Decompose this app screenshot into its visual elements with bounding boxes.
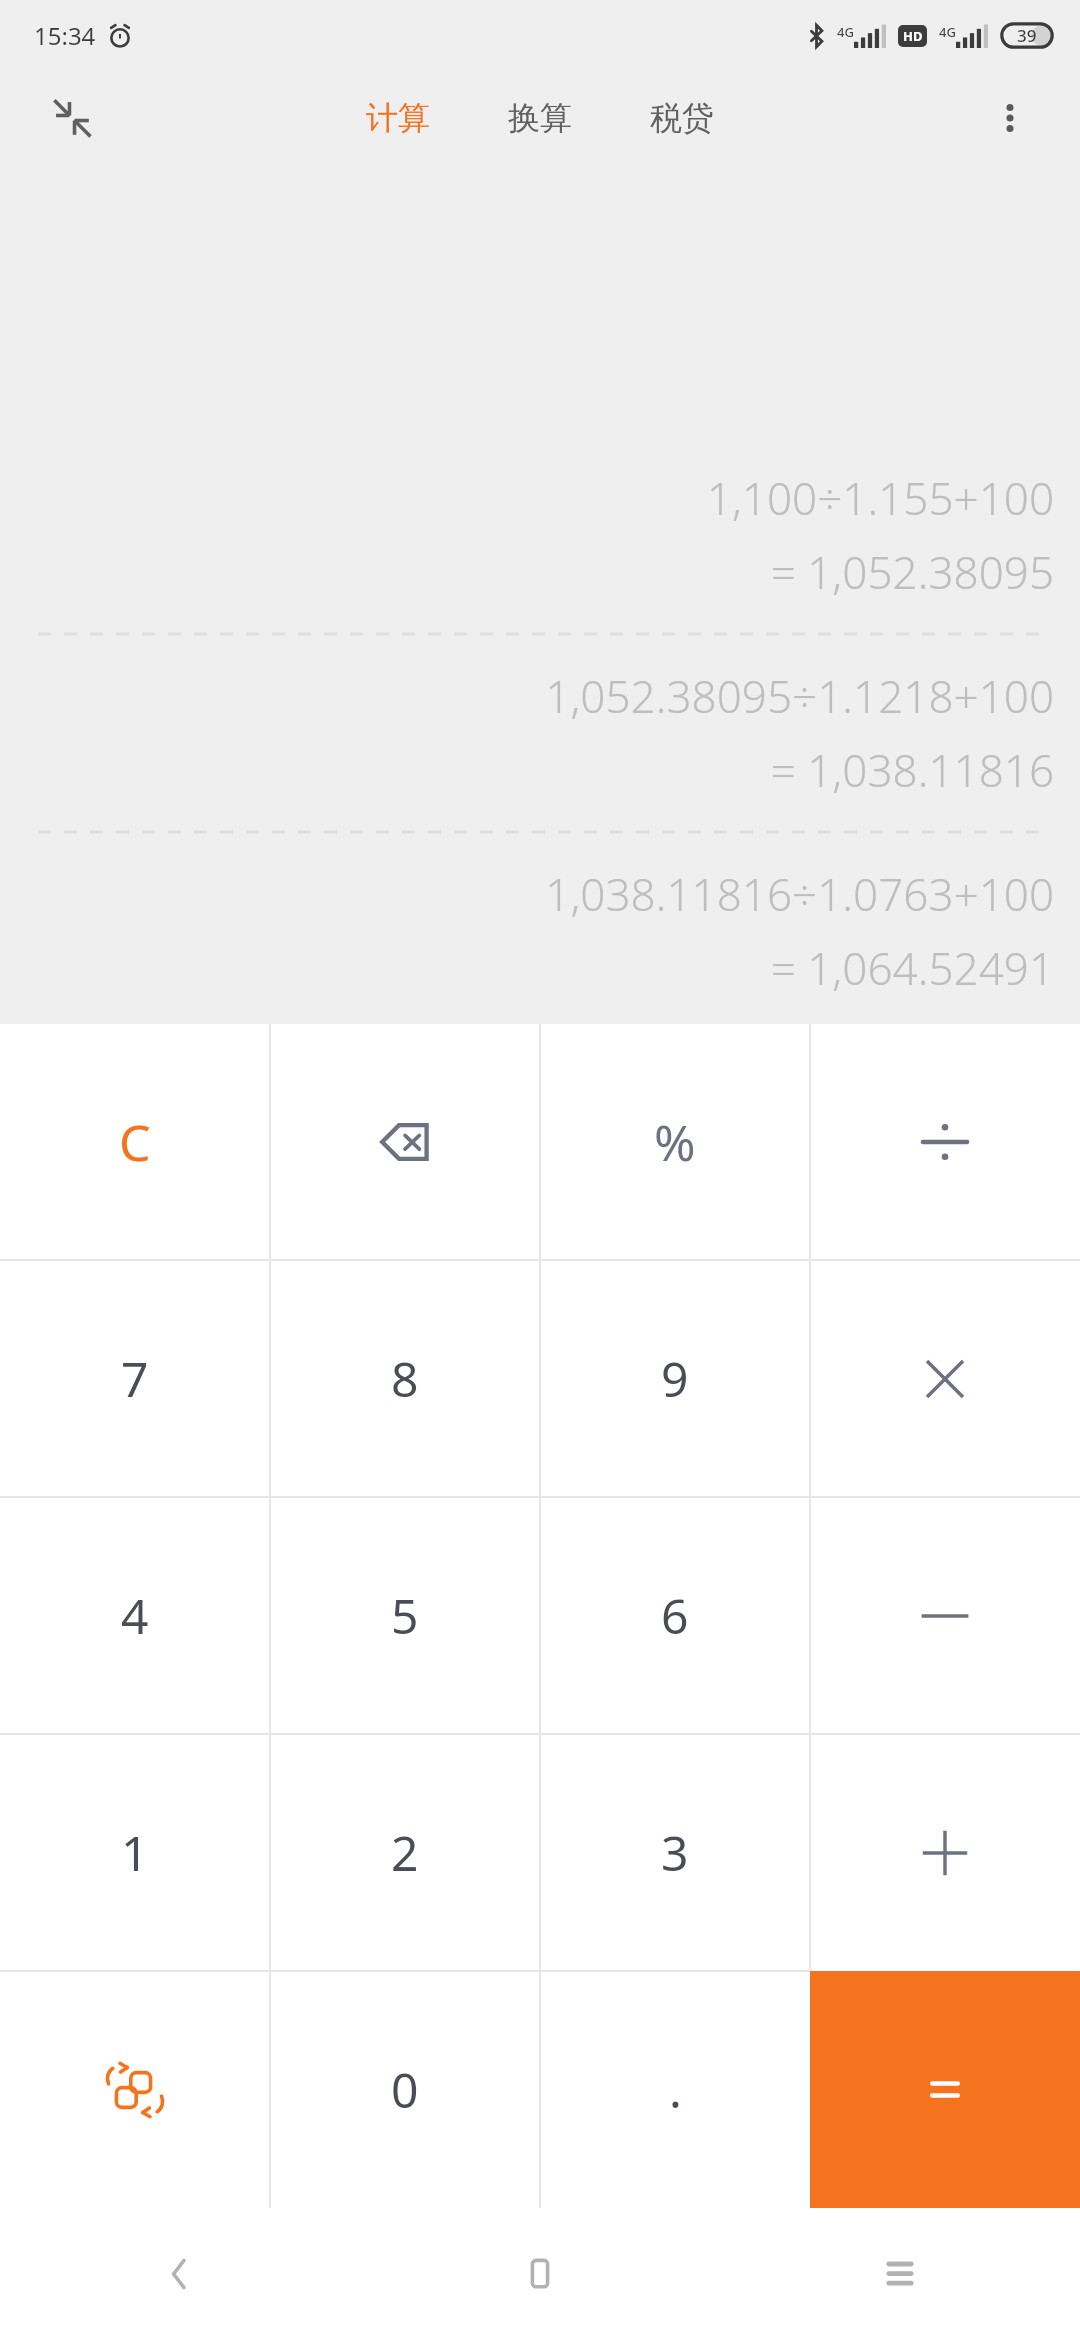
button[interactable]: 9 — [540, 1260, 810, 1497]
button[interactable]: 5 — [270, 1497, 540, 1734]
staticText: 计算 — [366, 98, 430, 138]
staticText: 1,038.11816÷1.0763+100 — [26, 864, 1054, 924]
button[interactable]: Back — [0, 2208, 360, 2340]
button[interactable]: 1,100÷1.155+100 — [0, 468, 1080, 602]
staticText: 3 — [661, 1820, 689, 1885]
staticText: 1 — [121, 1820, 149, 1885]
staticText: C — [119, 1108, 151, 1176]
button[interactable]: Backspace — [270, 1024, 540, 1260]
staticText: . — [669, 2057, 682, 2122]
button[interactable]: Add — [810, 1734, 1080, 1971]
button[interactable]: 计算 — [356, 90, 440, 146]
staticText: 2 — [391, 1820, 419, 1885]
staticText: 6 — [661, 1583, 689, 1648]
button[interactable]: 6 — [540, 1497, 810, 1734]
staticText: 1,100÷1.155+100 — [26, 468, 1054, 528]
button[interactable]: 4 — [0, 1497, 270, 1734]
staticText: = 1,038.11816 — [26, 740, 1054, 800]
button[interactable]: 8 — [270, 1260, 540, 1497]
staticText: 9 — [661, 1346, 689, 1411]
staticText: 4 — [121, 1583, 149, 1648]
button[interactable]: 2 — [270, 1734, 540, 1971]
staticText: 0 — [391, 2057, 419, 2122]
button[interactable]: Equals — [810, 1971, 1080, 2208]
button[interactable]: % — [540, 1024, 810, 1260]
button[interactable]: 0 — [270, 1971, 540, 2208]
staticText: 1,052.38095÷1.1218+100 — [26, 666, 1054, 726]
button[interactable]: . — [540, 1971, 810, 2208]
staticText: 4G — [837, 23, 854, 41]
button[interactable]: 3 — [540, 1734, 810, 1971]
staticText: = 1,064.52491 — [26, 938, 1054, 998]
staticText: 税贷 — [650, 98, 714, 138]
staticText: HD — [903, 27, 923, 45]
staticText: 7 — [121, 1346, 149, 1411]
button[interactable]: Divide — [810, 1024, 1080, 1260]
button[interactable]: Home — [360, 2208, 720, 2340]
staticText: 8 — [391, 1346, 419, 1411]
button[interactable]: 换算 — [498, 90, 582, 146]
button[interactable]: 1,052.38095÷1.1218+100 — [0, 666, 1080, 800]
button[interactable]: More options — [970, 78, 1050, 158]
staticText: 4G — [939, 23, 956, 41]
staticText: 39 — [1017, 24, 1037, 47]
button[interactable]: Multiply — [810, 1260, 1080, 1497]
button[interactable]: 7 — [0, 1260, 270, 1497]
staticText: = 1,052.38095 — [26, 542, 1054, 602]
staticText: 5 — [391, 1583, 419, 1648]
staticText: % — [654, 1108, 696, 1176]
staticText: 15:34 — [34, 19, 96, 52]
button[interactable]: Subtract — [810, 1497, 1080, 1734]
button[interactable]: 1,038.11816÷1.0763+100 — [0, 864, 1080, 998]
button[interactable]: Recents — [720, 2208, 1080, 2340]
staticText: 换算 — [508, 98, 572, 138]
button[interactable]: Switch keypad — [0, 1971, 270, 2208]
button[interactable]: 1 — [0, 1734, 270, 1971]
button[interactable]: 税贷 — [640, 90, 724, 146]
button[interactable]: Collapse — [32, 78, 112, 158]
button[interactable]: C — [0, 1024, 270, 1260]
